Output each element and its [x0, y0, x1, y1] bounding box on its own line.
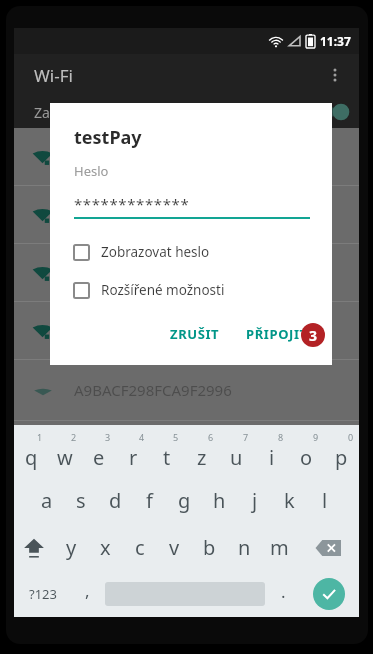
button[interactable]: ZRUŠIT — [160, 317, 230, 351]
staticText: d — [109, 487, 122, 514]
staticText: 7 — [243, 431, 249, 443]
button[interactable]: 5 — [150, 429, 184, 477]
button[interactable]: 2 — [48, 429, 82, 477]
button[interactable]: , — [71, 571, 103, 617]
button[interactable]: b — [192, 524, 227, 571]
button[interactable]: y — [54, 524, 88, 571]
button[interactable]: A9BACF298FCA9F2996 — [14, 360, 359, 420]
button[interactable]: 3 — [82, 429, 116, 477]
staticText: 9 — [313, 431, 319, 443]
staticText: a — [41, 487, 53, 514]
button[interactable]: 1 — [14, 429, 48, 477]
staticText: ************* — [74, 194, 190, 214]
staticText: PŘIPOJIT — [246, 325, 308, 343]
staticText: 6 — [208, 431, 214, 443]
button[interactable]: 4 — [116, 429, 150, 477]
staticText: y — [66, 534, 77, 561]
button[interactable]: f — [132, 477, 167, 524]
staticText: 11:37 — [320, 33, 351, 49]
staticText: testPay3 — [74, 263, 135, 283]
button[interactable]: d — [98, 477, 132, 524]
staticText: i — [269, 444, 275, 471]
button[interactable]: testPay4 — [14, 186, 359, 243]
staticText: 8 — [278, 431, 284, 443]
staticText: u — [230, 444, 243, 471]
staticText: Heslo — [74, 162, 109, 180]
button[interactable]: c — [122, 524, 157, 571]
button[interactable]: g — [167, 477, 202, 524]
staticText: r — [129, 444, 138, 471]
button[interactable]: k — [272, 477, 307, 524]
staticText: b — [203, 534, 216, 561]
button[interactable]: Shift — [14, 524, 54, 571]
button[interactable]: testPay3 — [14, 244, 359, 301]
staticText: w — [57, 444, 73, 471]
button[interactable]: Enter — [313, 578, 345, 610]
button[interactable]: testPay5 — [14, 128, 359, 185]
staticText: Zobrazovat heslo — [101, 243, 210, 261]
staticText: p — [335, 444, 348, 471]
staticText: Zapnuto — [34, 103, 90, 122]
button[interactable]: Zobrazovat heslo — [50, 239, 332, 265]
staticText: q — [25, 444, 38, 471]
staticText: l — [322, 487, 328, 514]
staticText: e — [93, 444, 105, 471]
staticText: o — [300, 444, 313, 471]
staticText: n — [238, 534, 251, 561]
staticText: 0 — [348, 431, 354, 443]
button[interactable]: testPay2 — [14, 302, 359, 359]
button[interactable]: n — [227, 524, 262, 571]
staticText: z — [197, 444, 207, 471]
staticText: Rozšířené možnosti — [101, 281, 225, 299]
staticText: 3 — [309, 326, 318, 345]
button[interactable]: 7 — [219, 429, 254, 477]
button[interactable]: 8 — [254, 429, 289, 477]
button[interactable]: . — [267, 571, 299, 617]
button[interactable]: Rozšířené možnosti — [50, 277, 332, 303]
button[interactable]: Zapnuto — [14, 96, 359, 128]
staticText: 1 — [37, 431, 43, 443]
staticText: 4 — [139, 431, 145, 443]
button[interactable]: 6 — [184, 429, 219, 477]
staticText: m — [270, 534, 289, 561]
staticText: ?123 — [29, 585, 57, 603]
staticText: v — [169, 534, 180, 561]
staticText: c — [135, 534, 145, 561]
staticText: testPay4 — [74, 205, 135, 225]
button[interactable]: h — [202, 477, 237, 524]
button[interactable]: a — [30, 477, 64, 524]
staticText: ZRUŠIT — [170, 325, 220, 343]
staticText: g — [178, 487, 191, 514]
staticText: , — [85, 579, 90, 602]
button[interactable]: ?123 — [14, 571, 71, 617]
button[interactable]: ************* — [74, 194, 310, 219]
staticText: h — [213, 487, 226, 514]
staticText: t — [163, 444, 171, 471]
button[interactable]: v — [157, 524, 192, 571]
button[interactable]: l — [307, 477, 342, 524]
button[interactable]: PŘIPOJIT — [236, 317, 318, 351]
button[interactable]: More options — [317, 57, 353, 93]
button[interactable]: j — [237, 477, 272, 524]
button[interactable]: x — [88, 524, 122, 571]
button[interactable]: 9 — [289, 429, 324, 477]
button[interactable]: 0 — [324, 429, 359, 477]
staticText: x — [100, 534, 111, 561]
staticText: testPay5 — [74, 147, 135, 167]
button[interactable]: Backspace — [297, 524, 359, 571]
staticText: j — [252, 487, 258, 514]
staticText: testPay — [74, 125, 142, 150]
staticText: s — [76, 487, 86, 514]
staticText: f — [146, 487, 153, 514]
staticText: . — [281, 580, 286, 603]
staticText: 2 — [71, 431, 77, 443]
staticText: 3 — [105, 431, 111, 443]
staticText: 5 — [173, 431, 179, 443]
button[interactable]: m — [262, 524, 297, 571]
staticText: A9BACF298FCA9F2996 — [74, 380, 232, 400]
staticText: k — [284, 487, 295, 514]
button[interactable]: s — [64, 477, 98, 524]
button[interactable]: Step 3 — [301, 323, 325, 347]
